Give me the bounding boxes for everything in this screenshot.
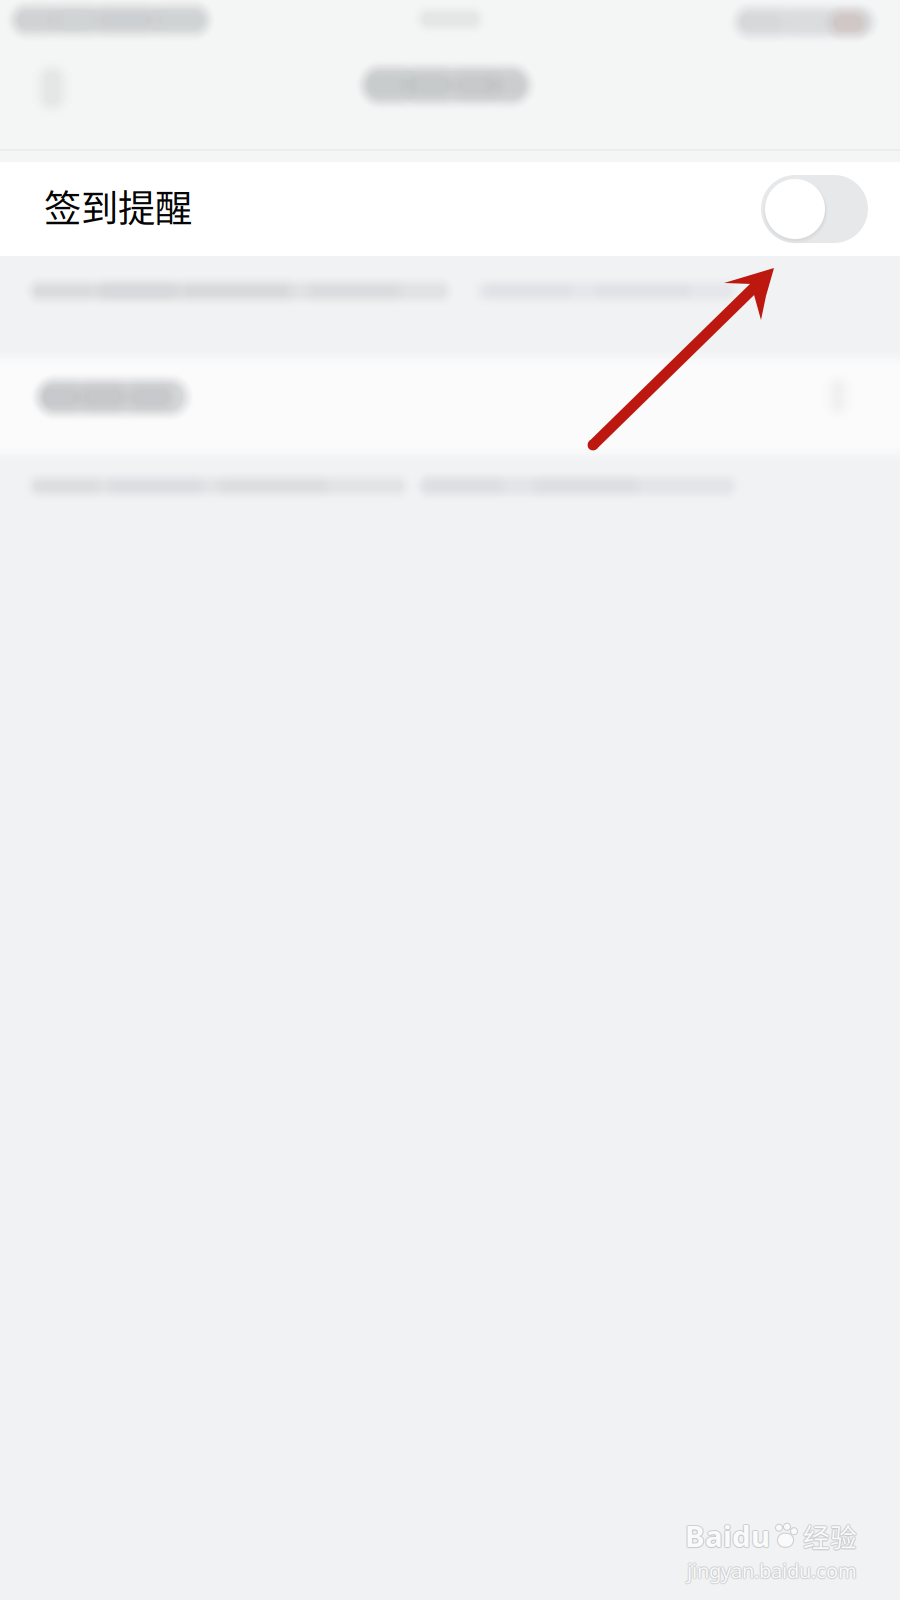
staticText: jingyan.baidu.com — [688, 1556, 858, 1583]
staticText: jingyan.baidu.com — [687, 1558, 857, 1585]
staticText: Baidu — [685, 1516, 770, 1555]
staticText: Baidu — [684, 1516, 769, 1555]
staticText: Baidu — [686, 1515, 771, 1554]
button[interactable]: 签到提醒 — [0, 162, 900, 256]
staticText: jingyan.baidu.com — [688, 1557, 858, 1584]
staticText: jingyan.baidu.com — [686, 1556, 856, 1583]
staticText: Baidu — [686, 1517, 771, 1556]
staticText: Baidu — [686, 1516, 771, 1555]
staticText: 经验 — [802, 1517, 856, 1556]
staticText: 经验 — [804, 1516, 858, 1555]
staticText: Baidu — [685, 1517, 770, 1556]
staticText: 经验 — [803, 1515, 857, 1554]
staticText: 经验 — [802, 1516, 856, 1555]
staticText: jingyan.baidu.com — [688, 1558, 858, 1585]
staticText: jingyan.baidu.com — [686, 1557, 856, 1584]
staticText: jingyan.baidu.com — [687, 1557, 857, 1584]
staticText: Baidu — [684, 1517, 769, 1556]
staticText: 经验 — [802, 1516, 856, 1554]
staticText: Baidu — [685, 1515, 770, 1554]
staticText: 经验 — [804, 1517, 858, 1556]
staticText: Baidu — [684, 1515, 769, 1554]
staticText: 经验 — [803, 1516, 857, 1555]
staticText: 签到提醒 — [44, 179, 192, 233]
staticText: 经验 — [804, 1516, 858, 1554]
staticText: jingyan.baidu.com — [686, 1558, 856, 1585]
staticText: 经验 — [803, 1518, 857, 1556]
staticText: jingyan.baidu.com — [687, 1556, 857, 1583]
